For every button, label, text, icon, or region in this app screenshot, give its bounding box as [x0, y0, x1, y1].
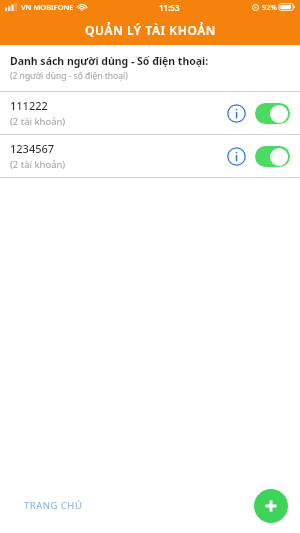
button[interactable]: Add account	[254, 489, 288, 523]
staticText: (2 tài khoản)	[10, 158, 66, 171]
button[interactable]: Toggle account enabled	[255, 103, 290, 124]
button[interactable]: TRANG CHỦ	[16, 493, 91, 518]
staticText: 111222	[10, 98, 48, 113]
staticText: TRANG CHỦ	[24, 499, 83, 512]
staticText: (2 người dùng - số điện thoại)	[10, 70, 128, 82]
staticText: VN MOBIFONE	[21, 2, 74, 12]
staticText: 92%	[262, 2, 277, 12]
staticText: Danh sách người dùng - Số điện thoại:	[10, 54, 209, 68]
button[interactable]: Information	[223, 143, 249, 169]
staticText: 11:53	[159, 2, 180, 13]
button[interactable]: 1234567	[0, 135, 300, 177]
button[interactable]: Information	[223, 100, 249, 126]
button[interactable]: 111222	[0, 92, 300, 134]
staticText: (2 tài khoản)	[10, 115, 66, 128]
button[interactable]: Toggle account enabled	[255, 146, 290, 167]
staticText: QUẢN LÝ TÀI KHOẢN	[85, 22, 216, 38]
staticText: 1234567	[10, 141, 55, 156]
